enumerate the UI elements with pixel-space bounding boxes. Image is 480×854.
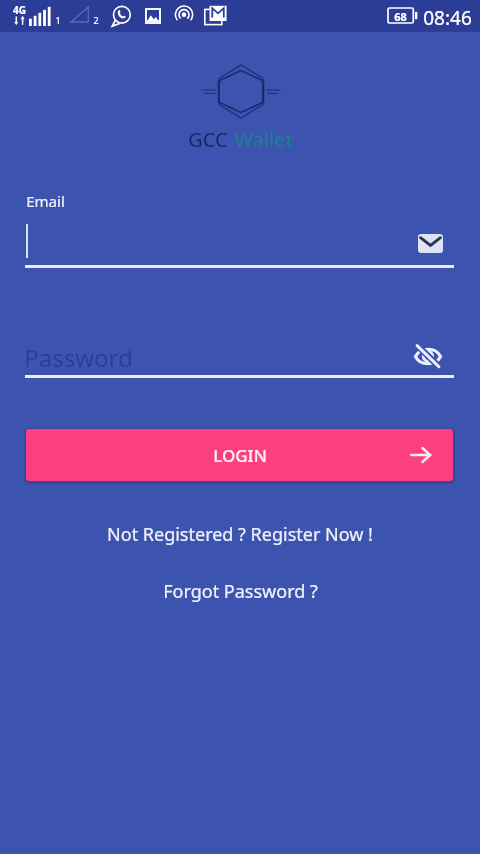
button[interactable]: Email <box>25 188 454 268</box>
staticText: 68 <box>394 9 407 24</box>
other: Email <box>415 228 445 258</box>
staticText: GCC <box>188 126 228 153</box>
button[interactable]: Forgot Password ? <box>153 575 328 608</box>
button[interactable]: Password <box>25 336 454 375</box>
staticText: Forgot Password ? <box>163 579 318 604</box>
staticText: Not Registered ? Register Now ! <box>107 522 373 547</box>
staticText: Password <box>24 341 133 374</box>
staticText: Email <box>26 191 65 211</box>
staticText: 2 <box>93 14 99 26</box>
button[interactable]: Show password <box>411 339 445 373</box>
button[interactable]: LOGIN <box>26 429 453 481</box>
staticText: 08:46 <box>423 5 472 31</box>
button[interactable]: Not Registered ? Register Now ! <box>97 518 383 551</box>
staticText: 1 <box>55 14 61 26</box>
staticText: 4G <box>13 3 26 17</box>
staticText: Wallet <box>234 126 293 153</box>
staticText: LOGIN <box>213 444 267 467</box>
